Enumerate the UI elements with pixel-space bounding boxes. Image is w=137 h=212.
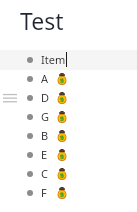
button[interactable]: A — [0, 69, 137, 88]
button[interactable]: Reorder — [0, 88, 137, 107]
button[interactable]: E — [0, 145, 137, 164]
staticText: Item — [41, 52, 66, 67]
staticText: D — [41, 90, 50, 105]
other: Reorder — [3, 93, 17, 102]
button[interactable]: Item — [0, 50, 137, 69]
staticText: E — [41, 147, 48, 162]
staticText: C — [41, 166, 48, 181]
button[interactable]: B — [0, 126, 137, 145]
button[interactable]: C — [0, 164, 137, 183]
button[interactable]: F — [0, 183, 137, 202]
button[interactable]: G — [0, 107, 137, 126]
staticText: A — [41, 71, 49, 86]
staticText: B — [41, 128, 49, 143]
staticText: Test — [20, 5, 64, 36]
staticText: F — [41, 185, 47, 200]
staticText: G — [41, 109, 50, 124]
